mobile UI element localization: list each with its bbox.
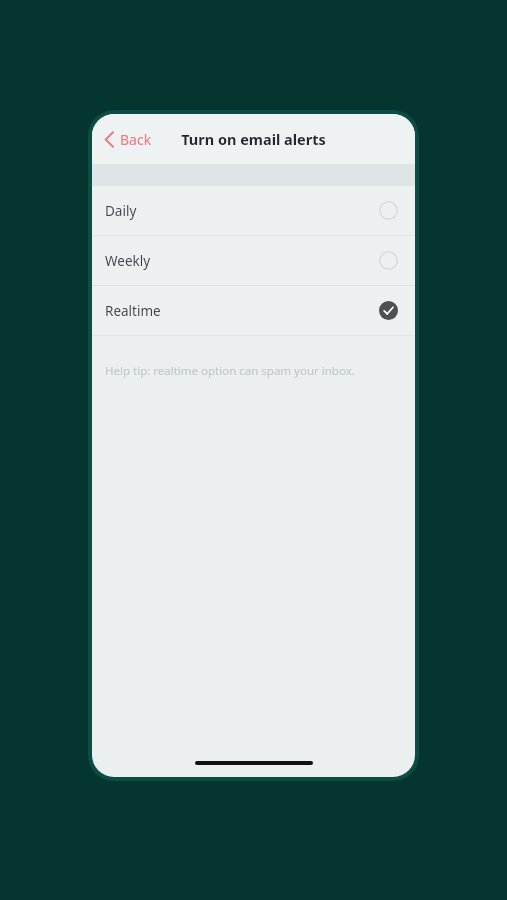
button[interactable]: Weekly (92, 236, 415, 285)
staticText: Weekly (105, 252, 151, 270)
staticText: Realtime (105, 302, 161, 320)
other: Select Daily (379, 201, 398, 220)
other: Select Weekly (379, 251, 398, 270)
other: Selected Realtime (379, 301, 398, 320)
button[interactable]: Daily (92, 186, 415, 235)
staticText: Back (120, 130, 152, 149)
staticText: Turn on email alerts (181, 129, 326, 149)
button[interactable]: Back (98, 124, 158, 155)
staticText: Help tip: realtime option can spam your … (105, 363, 355, 379)
staticText: Daily (105, 202, 137, 220)
button[interactable]: Realtime (92, 286, 415, 335)
